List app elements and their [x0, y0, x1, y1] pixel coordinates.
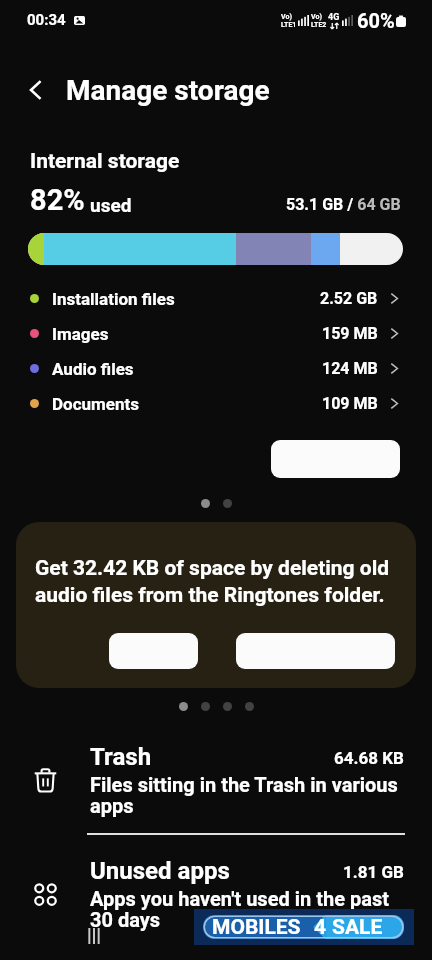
staticText: SALE — [332, 915, 383, 939]
button[interactable]: Delete files — [236, 633, 395, 669]
staticText: Vo) — [311, 13, 322, 21]
staticText: Internal storage — [30, 149, 180, 174]
staticText: Documents — [52, 394, 139, 414]
staticText: 00:34 — [27, 11, 66, 29]
staticText: Manage storage — [66, 74, 270, 107]
staticText: 159 MB — [322, 324, 378, 343]
button[interactable]: Images — [0, 316, 432, 351]
staticText: Get 32.42 KB of space by deleting old au… — [35, 556, 398, 607]
staticText: Trash — [90, 743, 152, 771]
staticText: Unused apps — [90, 857, 230, 885]
staticText: Files sitting in the Trash in various ap… — [90, 773, 404, 818]
staticText: Installation files — [52, 289, 175, 309]
button[interactable]: Installation files — [0, 281, 432, 316]
staticText: used — [90, 194, 132, 216]
staticText: Apps you haven't used in the past 30 day… — [90, 887, 404, 932]
button[interactable]: Documents — [0, 386, 432, 421]
staticText: 4 — [314, 915, 327, 939]
staticText: LTE2 — [311, 21, 327, 29]
button[interactable]: Free up space — [271, 440, 400, 478]
button[interactable]: Navigate up — [15, 69, 57, 111]
staticText: 109 MB — [322, 394, 378, 413]
staticText: 82% — [30, 183, 85, 217]
staticText: 124 MB — [322, 359, 378, 378]
staticText: 64.68 KB — [334, 748, 404, 768]
staticText: 53.1 GB / 64 GB — [286, 195, 401, 214]
staticText: Vo) — [281, 13, 292, 21]
staticText: 2.52 GB — [320, 289, 378, 308]
button[interactable]: Later — [109, 633, 198, 669]
button[interactable]: Unused apps — [0, 835, 432, 944]
staticText: 4G — [328, 12, 340, 23]
staticText: Images — [52, 324, 109, 344]
other: Trash — [32, 767, 59, 794]
staticText: 60% — [357, 9, 395, 32]
other: Unused apps — [33, 882, 58, 907]
button[interactable]: Trash — [0, 731, 432, 833]
button[interactable]: Audio files — [0, 351, 432, 386]
button[interactable]: Recent apps — [78, 920, 110, 952]
staticText: LTE1 — [281, 21, 297, 29]
staticText: MOBILES — [212, 915, 301, 939]
staticText: 1.81 GB — [343, 862, 404, 882]
staticText: Audio files — [52, 359, 134, 379]
